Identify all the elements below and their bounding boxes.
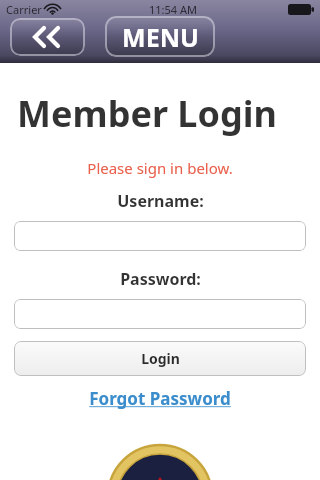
staticText: Member Login <box>17 89 277 138</box>
button[interactable]: MENU <box>105 16 215 57</box>
button[interactable]: Forgot Password <box>83 385 237 412</box>
staticText: Please sign in below. <box>87 158 233 178</box>
button[interactable]: Back <box>10 18 85 56</box>
button[interactable] <box>14 221 306 251</box>
staticText: Username: <box>117 190 204 212</box>
staticText: 11:54 AM <box>149 2 197 17</box>
button[interactable]: Login <box>14 341 306 376</box>
staticText: Carrier <box>6 2 42 17</box>
staticText: Forgot Password <box>89 387 231 410</box>
button[interactable] <box>14 299 306 329</box>
staticText: Login <box>141 349 180 368</box>
staticText: Password: <box>120 268 201 290</box>
staticText: MENU <box>122 20 199 54</box>
